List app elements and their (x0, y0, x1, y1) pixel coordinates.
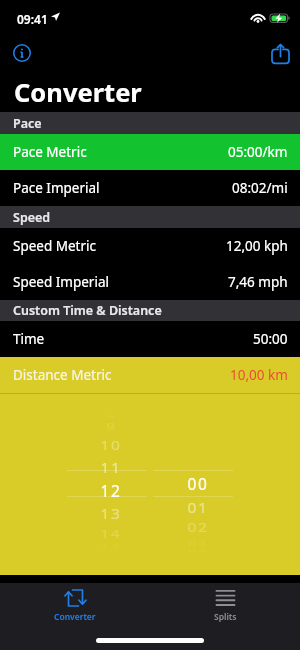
button[interactable]: Share (263, 34, 297, 66)
staticText: Pace (13, 115, 42, 132)
button[interactable]: Pace Imperial (0, 170, 300, 206)
staticText: 00 (187, 473, 209, 494)
button[interactable]: Distance Metric (0, 357, 300, 393)
staticText: 10 (100, 436, 122, 453)
button[interactable]: Converter (0, 583, 150, 650)
staticText: Speed Metric (13, 237, 97, 255)
staticText: 7,46 mph (228, 273, 288, 291)
staticText: Custom Time & Distance (13, 302, 162, 319)
staticText: 13 (100, 504, 122, 523)
button[interactable]: Speed Metric (0, 228, 300, 264)
button[interactable]: Speed Imperial (0, 264, 300, 300)
staticText: Splits (214, 611, 237, 623)
staticText: Converter (54, 611, 96, 623)
staticText: Converter (14, 75, 142, 110)
staticText: Time (13, 330, 45, 348)
staticText: 09:41 (17, 11, 48, 27)
staticText: Speed Imperial (13, 273, 109, 291)
staticText: 01 (187, 497, 209, 516)
staticText: 50:00 (253, 330, 288, 348)
staticText: 9 (106, 420, 117, 432)
button[interactable]: Time (0, 321, 300, 357)
staticText: 14 (100, 526, 122, 541)
staticText: Pace Metric (13, 143, 87, 161)
staticText: 11 (100, 456, 122, 477)
button[interactable]: Splits (150, 583, 300, 650)
staticText: 05:00/km (228, 143, 288, 161)
staticText: 08:02/mi (232, 179, 288, 197)
staticText: 12,00 kph (226, 237, 288, 255)
button[interactable]: Pace Metric (0, 134, 300, 170)
staticText: Speed (13, 209, 51, 226)
staticText: 02 (187, 519, 209, 535)
staticText: 04 (187, 549, 209, 553)
staticText: 10,00 km (230, 366, 288, 384)
staticText: Distance Metric (13, 366, 112, 384)
staticText: Pace Imperial (13, 179, 100, 197)
button[interactable]: Info (5, 37, 39, 69)
staticText: 03 (187, 538, 209, 548)
staticText: 12 (100, 480, 122, 501)
